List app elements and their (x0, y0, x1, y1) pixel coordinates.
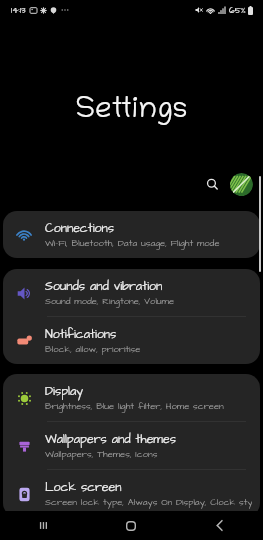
button[interactable]: Recents (0, 511, 87, 540)
button[interactable]: Wallpapers and themes (3, 422, 260, 469)
staticText: Wi-Fi, Bluetooth, Data usage, Flight mod… (45, 237, 220, 250)
button[interactable]: Sounds and vibration (3, 269, 260, 316)
staticText: Connections (45, 220, 114, 237)
button[interactable]: Profile (230, 173, 253, 196)
staticText: Settings (0, 96, 263, 128)
staticText: Sound mode, Ringtone, Volume (45, 295, 175, 308)
staticText: Block, allow, prioritise (45, 343, 141, 356)
staticText: Brightness, Blue light filter, Home scre… (45, 400, 224, 413)
staticText: Display (45, 383, 84, 400)
staticText: Wallpapers, Themes, Icons (45, 448, 158, 461)
staticText: 65% (229, 4, 246, 17)
button[interactable]: Back (175, 511, 263, 540)
staticText: Lock screen (45, 479, 122, 496)
button[interactable]: Search (200, 172, 224, 196)
staticText: Sounds and vibration (45, 278, 163, 295)
button[interactable]: Lock screen (3, 470, 260, 517)
button[interactable]: Notifications (3, 317, 260, 364)
staticText: Wallpapers and themes (45, 431, 176, 448)
staticText: 14:13 (11, 4, 26, 17)
button[interactable]: Connections (3, 211, 260, 258)
button[interactable]: Home (87, 511, 175, 540)
staticText: Notifications (45, 326, 117, 343)
staticText: Screen lock type, Always On Display, Clo… (45, 496, 252, 509)
button[interactable]: Display (3, 374, 260, 421)
